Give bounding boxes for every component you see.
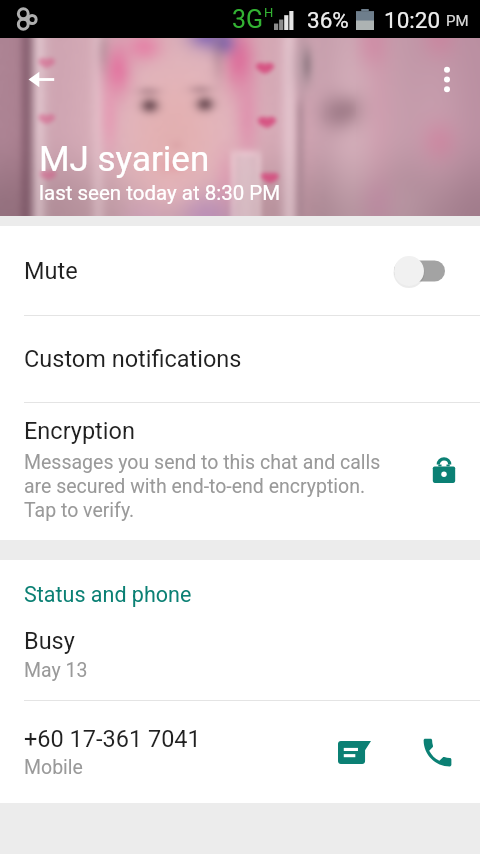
staticText: Mute <box>24 257 78 285</box>
staticText: H <box>264 5 274 20</box>
staticText: Busy <box>24 627 75 655</box>
staticText: 10:20 <box>384 7 441 33</box>
staticText: +60 17-361 7041 <box>24 725 201 753</box>
staticText: 3G <box>232 5 264 34</box>
button[interactable]: Mute <box>0 226 480 315</box>
staticText: May 13 <box>24 659 88 682</box>
staticText: Encryption <box>24 417 135 445</box>
button[interactable]: Message <box>330 728 378 776</box>
staticText: MJ syarien <box>39 139 210 180</box>
staticText: last seen today at 8:30 PM <box>39 181 281 205</box>
staticText: Mobile <box>24 756 83 779</box>
staticText: Custom notifications <box>24 345 242 373</box>
button[interactable]: More options <box>423 55 471 103</box>
button[interactable]: +60 17-361 7041 <box>0 701 480 803</box>
button[interactable]: Back <box>17 55 65 103</box>
button[interactable]: Call <box>413 728 461 776</box>
button[interactable]: Encryption <box>0 403 480 540</box>
staticText: PM <box>446 12 469 30</box>
button[interactable]: Custom notifications <box>0 316 480 402</box>
staticText: Messages you send to this chat and calls… <box>24 451 381 522</box>
staticText: 36% <box>307 7 349 33</box>
staticText: Status and phone <box>24 582 192 607</box>
button[interactable]: Status and phone <box>0 560 480 700</box>
